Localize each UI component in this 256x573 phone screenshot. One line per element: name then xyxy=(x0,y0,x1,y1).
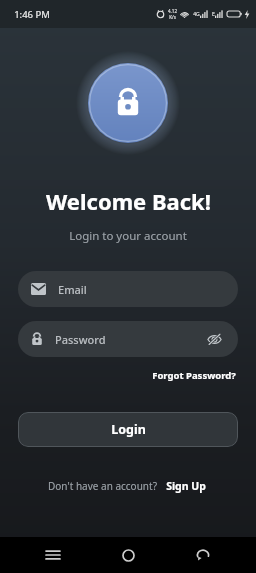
staticText: K/s xyxy=(169,14,176,20)
button[interactable]: Home xyxy=(106,537,150,573)
staticText: 4.12 xyxy=(168,8,177,14)
staticText: Sign Up xyxy=(166,479,206,493)
button[interactable]: Email xyxy=(18,271,238,307)
staticText: Login to your account xyxy=(69,228,187,244)
staticText: E xyxy=(212,11,215,18)
staticText: Welcome Back! xyxy=(46,186,211,216)
button[interactable]: Recent apps xyxy=(31,537,75,573)
staticText: Don't have an account? xyxy=(48,479,157,493)
button[interactable]: Sign Up xyxy=(164,476,208,496)
staticText: Email xyxy=(58,282,225,297)
staticText: 1:46 PM xyxy=(14,8,50,21)
button[interactable]: Back xyxy=(181,537,225,573)
button[interactable]: Password xyxy=(18,321,238,357)
staticText: 4G xyxy=(193,11,200,18)
staticText: Forgot Password? xyxy=(152,369,236,382)
staticText: Login xyxy=(111,421,146,438)
button[interactable]: Login xyxy=(18,412,238,447)
button[interactable]: Show password xyxy=(203,328,225,350)
staticText: Password xyxy=(55,332,203,347)
button[interactable]: Forgot Password? xyxy=(150,366,238,385)
